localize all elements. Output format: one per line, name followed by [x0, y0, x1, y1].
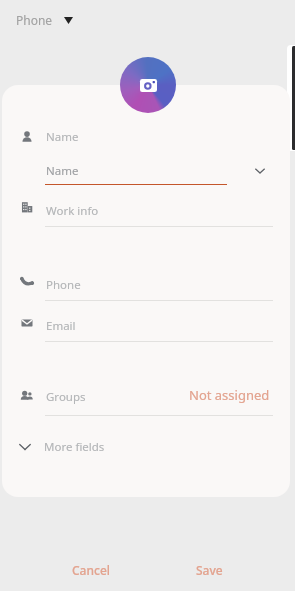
button[interactable]: Change photo: [120, 57, 176, 113]
staticText: More fields: [44, 439, 105, 455]
button[interactable]: More fields: [2, 433, 290, 461]
staticText: Save: [196, 562, 223, 578]
staticText: Work info: [46, 203, 99, 219]
staticText: Name: [46, 129, 79, 145]
button[interactable]: Not assigned: [152, 385, 270, 405]
staticText: Not assigned: [189, 386, 270, 404]
staticText: Email: [46, 318, 76, 334]
staticText: Phone: [16, 12, 53, 28]
button[interactable]: Cancel: [64, 558, 119, 582]
staticText: Groups: [46, 389, 86, 405]
button[interactable]: Expand name fields: [248, 159, 272, 183]
staticText: Name: [46, 163, 79, 179]
staticText: Phone: [46, 277, 81, 293]
staticText: Cancel: [72, 562, 111, 578]
button[interactable]: Phone: [12, 8, 77, 32]
button[interactable]: Save: [188, 558, 231, 582]
